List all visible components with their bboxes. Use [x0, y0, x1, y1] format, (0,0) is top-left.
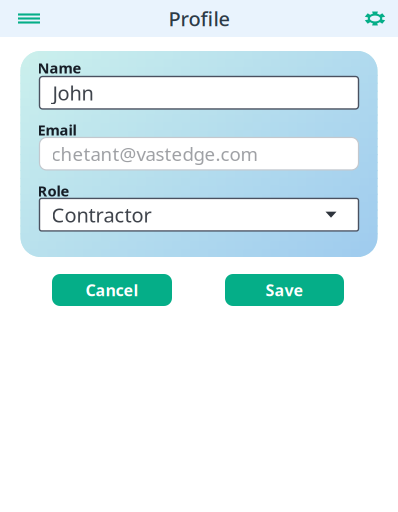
staticText: Email	[37, 120, 76, 139]
staticText: Role	[37, 181, 69, 200]
staticText: Profile	[168, 5, 229, 32]
staticText: Name	[37, 58, 81, 77]
staticText: chetant@vastedge.com	[51, 141, 257, 166]
button[interactable]: Cancel	[52, 274, 172, 306]
button[interactable]: Save	[225, 274, 344, 306]
staticText: John	[52, 79, 93, 106]
button[interactable]: Settings	[352, 0, 398, 36]
staticText: Save	[265, 279, 303, 301]
staticText: Cancel	[85, 279, 138, 301]
button[interactable]: Menu	[0, 0, 58, 36]
staticText: Contractor	[51, 201, 151, 228]
